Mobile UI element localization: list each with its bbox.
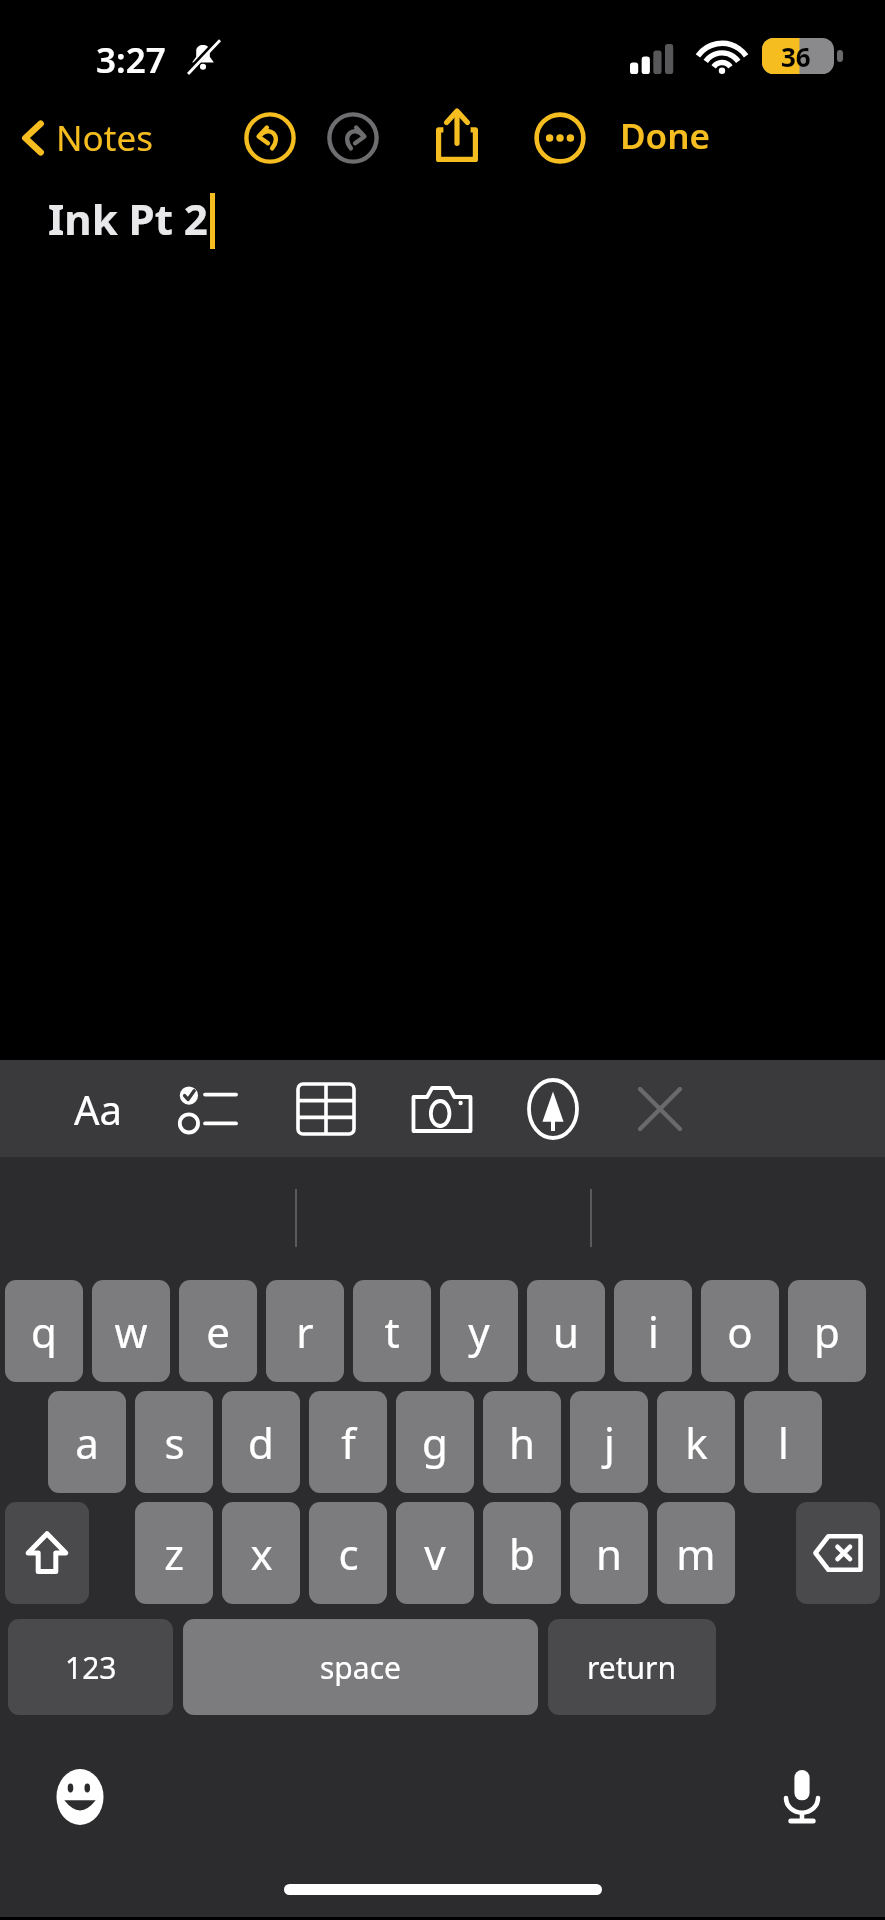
button[interactable]: k — [657, 1391, 735, 1493]
staticText: m — [676, 1525, 716, 1582]
staticText: Aa — [74, 1082, 122, 1136]
button[interactable]: Share — [426, 104, 488, 166]
button[interactable]: Redo — [323, 108, 383, 168]
staticText: 36 — [781, 39, 811, 74]
button[interactable]: p — [788, 1280, 866, 1382]
staticText: s — [164, 1414, 185, 1471]
button[interactable]: u — [527, 1280, 605, 1382]
button[interactable]: g — [396, 1391, 474, 1493]
staticText: Notes — [56, 114, 153, 162]
button[interactable]: Done — [608, 104, 723, 168]
button[interactable]: space — [183, 1619, 538, 1715]
button[interactable]: d — [222, 1391, 300, 1493]
button[interactable]: return — [548, 1619, 716, 1715]
staticText: y — [468, 1303, 490, 1360]
staticText: p — [814, 1303, 840, 1360]
button[interactable]: Table — [288, 1074, 364, 1144]
staticText: n — [596, 1525, 622, 1582]
button[interactable]: Dictate — [762, 1757, 842, 1837]
button[interactable]: f — [309, 1391, 387, 1493]
staticText: k — [685, 1414, 708, 1471]
staticText: j — [604, 1414, 615, 1471]
button[interactable]: w — [92, 1280, 170, 1382]
staticText: z — [164, 1525, 184, 1582]
button[interactable]: r — [266, 1280, 344, 1382]
staticText: e — [206, 1303, 230, 1360]
button[interactable]: Checklist — [172, 1074, 248, 1144]
button[interactable]: Text format — [62, 1074, 134, 1144]
staticText: return — [587, 1647, 677, 1688]
staticText: g — [422, 1414, 448, 1471]
button[interactable]: o — [701, 1280, 779, 1382]
button[interactable]: y — [440, 1280, 518, 1382]
button[interactable]: Close keyboard — [622, 1074, 698, 1144]
button[interactable]: c — [309, 1502, 387, 1604]
staticText: Ink Pt 2 — [48, 190, 208, 247]
staticText: v — [424, 1525, 446, 1582]
button[interactable]: Shift — [5, 1502, 89, 1604]
staticText: o — [727, 1303, 753, 1360]
staticText: c — [338, 1525, 359, 1582]
button[interactable]: Markup — [515, 1074, 591, 1144]
button[interactable]: q — [5, 1280, 83, 1382]
button[interactable]: Notes — [12, 108, 163, 168]
button[interactable]: i — [614, 1280, 692, 1382]
button[interactable]: v — [396, 1502, 474, 1604]
button[interactable]: e — [179, 1280, 257, 1382]
button[interactable]: Backspace — [796, 1502, 880, 1604]
button[interactable]: n — [570, 1502, 648, 1604]
staticText: 123 — [65, 1647, 117, 1688]
staticText: d — [248, 1414, 274, 1471]
button[interactable]: More — [530, 108, 590, 168]
button[interactable]: t — [353, 1280, 431, 1382]
button[interactable]: l — [744, 1391, 822, 1493]
staticText: t — [384, 1303, 400, 1360]
staticText: space — [320, 1647, 401, 1688]
button[interactable]: Camera — [402, 1074, 482, 1144]
button[interactable]: s — [135, 1391, 213, 1493]
staticText: a — [75, 1414, 99, 1471]
staticText: u — [553, 1303, 579, 1360]
staticText: x — [250, 1525, 273, 1582]
button[interactable]: 123 — [8, 1619, 173, 1715]
button[interactable]: Emoji — [40, 1757, 120, 1837]
staticText: q — [31, 1303, 57, 1360]
button[interactable]: x — [222, 1502, 300, 1604]
staticText: h — [509, 1414, 535, 1471]
button[interactable]: m — [657, 1502, 735, 1604]
button[interactable]: b — [483, 1502, 561, 1604]
staticText: b — [509, 1525, 535, 1582]
staticText: 3:27 — [96, 36, 166, 84]
staticText: f — [341, 1414, 356, 1471]
staticText: w — [114, 1303, 148, 1360]
button[interactable]: h — [483, 1391, 561, 1493]
button[interactable]: a — [48, 1391, 126, 1493]
button[interactable]: z — [135, 1502, 213, 1604]
button[interactable]: j — [570, 1391, 648, 1493]
staticText: i — [648, 1303, 659, 1360]
staticText: Done — [620, 112, 711, 160]
button[interactable]: Undo — [240, 108, 300, 168]
staticText: l — [778, 1414, 789, 1471]
staticText: r — [296, 1303, 314, 1360]
